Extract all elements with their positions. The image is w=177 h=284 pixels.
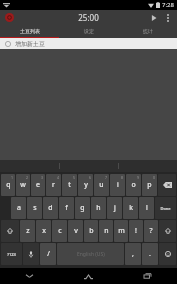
staticText: 增加新土豆	[15, 40, 45, 48]
staticText: n	[104, 226, 109, 236]
button[interactable]: ?123	[1, 243, 22, 265]
staticText: ?	[149, 226, 153, 236]
button[interactable]: r	[46, 174, 61, 196]
staticText: i	[117, 180, 119, 190]
button[interactable]: Recent apps	[118, 268, 177, 284]
staticText: y	[84, 180, 88, 190]
staticText: 3	[41, 175, 44, 180]
staticText: q	[6, 180, 11, 190]
button[interactable]: w	[16, 174, 30, 196]
staticText: v	[74, 226, 78, 236]
button[interactable]: k	[123, 197, 138, 219]
staticText: ?123	[7, 252, 16, 257]
button[interactable]: n	[99, 220, 113, 242]
button[interactable]: l	[139, 197, 154, 219]
button[interactable]: t	[62, 174, 77, 196]
staticText: /	[47, 249, 50, 259]
staticText: d	[48, 203, 53, 213]
staticText: 7	[105, 175, 108, 180]
button[interactable]: 土豆列表	[0, 25, 59, 37]
staticText: u	[99, 180, 104, 190]
staticText: a	[17, 203, 21, 213]
staticText: 6	[89, 175, 92, 180]
button[interactable]: Done	[155, 197, 176, 219]
button[interactable]: !	[129, 220, 143, 242]
staticText: e	[36, 180, 40, 190]
button[interactable]: v	[68, 220, 83, 242]
button[interactable]: /	[40, 243, 56, 265]
staticText: 0	[153, 175, 156, 180]
button[interactable]: b	[84, 220, 98, 242]
button[interactable]: Emoji	[159, 243, 176, 265]
staticText: Done	[160, 206, 171, 211]
button[interactable]: p	[142, 174, 157, 196]
button[interactable]: Shift	[1, 220, 19, 242]
button[interactable]: q	[1, 174, 15, 196]
staticText: o	[131, 180, 136, 190]
button[interactable]: f	[59, 197, 74, 219]
button[interactable]: z	[20, 220, 35, 242]
button[interactable]: Shift	[159, 220, 176, 242]
button[interactable]: 设定	[59, 25, 118, 37]
button[interactable]: Home	[59, 268, 118, 284]
staticText: 9	[137, 175, 140, 180]
staticText: .	[149, 249, 151, 259]
staticText: x	[42, 226, 46, 236]
staticText: 5	[73, 175, 76, 180]
staticText: r	[52, 180, 55, 190]
staticText: c	[58, 226, 62, 236]
button[interactable]: a	[11, 197, 26, 219]
staticText: 25:00	[78, 12, 99, 23]
button[interactable]: Hide keyboard	[0, 268, 59, 284]
staticText: j	[114, 203, 116, 213]
staticText: !	[135, 226, 137, 236]
button[interactable]: Backspace	[158, 174, 176, 196]
staticText: s	[33, 203, 37, 213]
staticText: k	[129, 203, 133, 213]
staticText: w	[20, 180, 26, 190]
staticText: 8	[121, 175, 124, 180]
button[interactable]: ?	[144, 220, 158, 242]
staticText: 土豆列表	[20, 28, 40, 34]
staticText: l	[146, 203, 148, 213]
staticText: m	[118, 226, 125, 236]
button[interactable]: 增加新土豆	[0, 38, 177, 49]
button[interactable]: i	[110, 174, 125, 196]
button[interactable]: App logo	[4, 12, 15, 23]
button[interactable]: o	[126, 174, 141, 196]
button[interactable]: s	[27, 197, 42, 219]
button[interactable]: Start timer	[146, 10, 162, 25]
button[interactable]: j	[107, 197, 122, 219]
button[interactable]: y	[78, 174, 93, 196]
button[interactable]: d	[43, 197, 58, 219]
button[interactable]: g	[75, 197, 90, 219]
staticText: g	[80, 203, 85, 213]
button[interactable]: e	[31, 174, 45, 196]
staticText: t	[68, 180, 71, 190]
staticText: 4	[57, 175, 60, 180]
button[interactable]: h	[91, 197, 106, 219]
button[interactable]: x	[36, 220, 51, 242]
staticText: 7:28	[162, 1, 174, 9]
staticText: 1	[11, 175, 14, 180]
staticText: z	[26, 226, 30, 236]
button[interactable]: Space	[57, 243, 124, 265]
button[interactable]: u	[94, 174, 109, 196]
staticText: ,	[132, 249, 134, 259]
staticText: English (US)	[77, 251, 105, 258]
button[interactable]: Voice input	[23, 243, 39, 265]
button[interactable]: 统计	[118, 25, 177, 37]
button[interactable]: m	[114, 220, 128, 242]
staticText: b	[89, 226, 94, 236]
staticText: p	[147, 180, 152, 190]
staticText: 统计	[143, 28, 153, 34]
button[interactable]: c	[52, 220, 67, 242]
staticText: h	[96, 203, 101, 213]
button[interactable]: .	[142, 243, 158, 265]
button[interactable]: More options	[162, 10, 174, 25]
staticText: 2	[26, 175, 29, 180]
button[interactable]: ,	[125, 243, 141, 265]
